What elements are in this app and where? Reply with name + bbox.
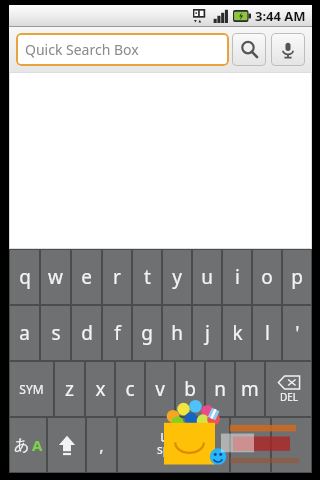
button[interactable]: x <box>86 362 114 416</box>
button[interactable]: q <box>10 250 39 304</box>
staticText: ' <box>295 320 300 346</box>
button[interactable]: h <box>163 306 191 360</box>
staticText: A <box>32 435 43 455</box>
staticText: h <box>171 320 183 346</box>
staticText: r <box>113 264 121 290</box>
staticText: l <box>265 320 270 346</box>
staticText: 3:44 AM <box>255 7 306 25</box>
staticText: SYM <box>19 381 44 397</box>
button[interactable]: Search <box>232 33 266 66</box>
button[interactable]: p <box>283 250 311 304</box>
staticText: m <box>241 376 259 402</box>
button[interactable]: g <box>133 306 161 360</box>
button[interactable]: v <box>146 362 174 416</box>
button[interactable]: ' <box>283 306 311 360</box>
button[interactable]: z <box>55 362 84 416</box>
staticText: , <box>99 434 104 457</box>
staticText: x <box>95 376 106 402</box>
button[interactable]: k <box>223 306 251 360</box>
staticText: Quick Search Box <box>25 40 139 59</box>
staticText: e <box>81 264 92 290</box>
button[interactable]: Shift <box>48 418 85 472</box>
staticText: b <box>184 376 196 402</box>
staticText: f <box>114 320 121 346</box>
button[interactable]: Delete <box>266 362 311 416</box>
button[interactable]: Quick Search Box <box>16 33 229 66</box>
button[interactable]: f <box>103 306 131 360</box>
button[interactable]: t <box>133 250 161 304</box>
button[interactable]: n <box>206 362 234 416</box>
button[interactable] <box>231 418 270 472</box>
button[interactable]: i <box>223 250 251 304</box>
button[interactable]: a <box>10 306 39 360</box>
staticText: n <box>214 376 226 402</box>
button[interactable]: s <box>41 306 70 360</box>
staticText: w <box>48 264 63 290</box>
button[interactable]: c <box>116 362 144 416</box>
staticText: v <box>155 376 165 402</box>
staticText: i <box>235 264 240 290</box>
staticText: k <box>232 320 243 346</box>
staticText: c <box>125 376 135 402</box>
button[interactable]: space <box>118 418 229 472</box>
staticText: u <box>201 264 213 290</box>
staticText: あ <box>14 436 30 455</box>
staticText: DEL <box>280 390 299 404</box>
button[interactable]: Switch input language <box>10 418 46 472</box>
staticText: z <box>65 376 74 402</box>
staticText: space <box>157 441 190 457</box>
button[interactable]: o <box>253 250 281 304</box>
button[interactable]: b <box>176 362 204 416</box>
button[interactable]: m <box>236 362 264 416</box>
staticText: s <box>51 320 61 346</box>
staticText: j <box>205 320 210 346</box>
staticText: t <box>144 264 151 290</box>
staticText: o <box>261 264 273 290</box>
button[interactable]: y <box>163 250 191 304</box>
staticText: g <box>141 320 153 346</box>
button[interactable]: j <box>193 306 221 360</box>
staticText: d <box>81 320 93 346</box>
button[interactable]: r <box>103 250 131 304</box>
staticText: y <box>172 264 182 290</box>
button[interactable]: w <box>41 250 70 304</box>
button[interactable]: SYM <box>10 362 53 416</box>
button[interactable]: d <box>72 306 101 360</box>
staticText: q <box>19 264 31 290</box>
button[interactable]: Voice search <box>271 33 305 66</box>
button[interactable]: e <box>72 250 101 304</box>
staticText: p <box>291 264 303 290</box>
staticText: a <box>19 320 30 346</box>
button[interactable]: l <box>253 306 281 360</box>
button[interactable]: u <box>193 250 221 304</box>
button[interactable]: , <box>87 418 116 472</box>
button[interactable] <box>272 418 311 472</box>
